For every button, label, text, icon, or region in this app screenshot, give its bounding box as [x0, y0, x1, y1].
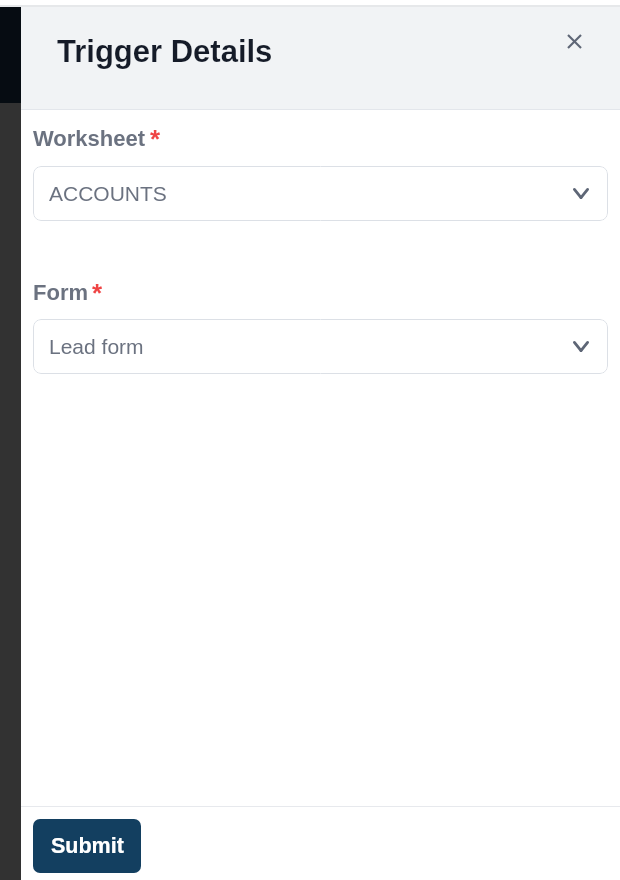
button[interactable]: Close dialog [553, 20, 595, 62]
staticText: Submit [51, 834, 124, 858]
button[interactable]: Submit [33, 819, 141, 873]
staticText: * [92, 278, 103, 307]
staticText: Worksheet [33, 126, 146, 151]
staticText: * [150, 124, 161, 153]
staticText: ACCOUNTS [49, 182, 167, 205]
staticText: Form [33, 280, 88, 305]
button[interactable]: ACCOUNTS [33, 166, 608, 221]
button[interactable]: Lead form [33, 319, 608, 374]
staticText: Trigger Details [57, 34, 273, 69]
staticText: Lead form [49, 335, 144, 358]
